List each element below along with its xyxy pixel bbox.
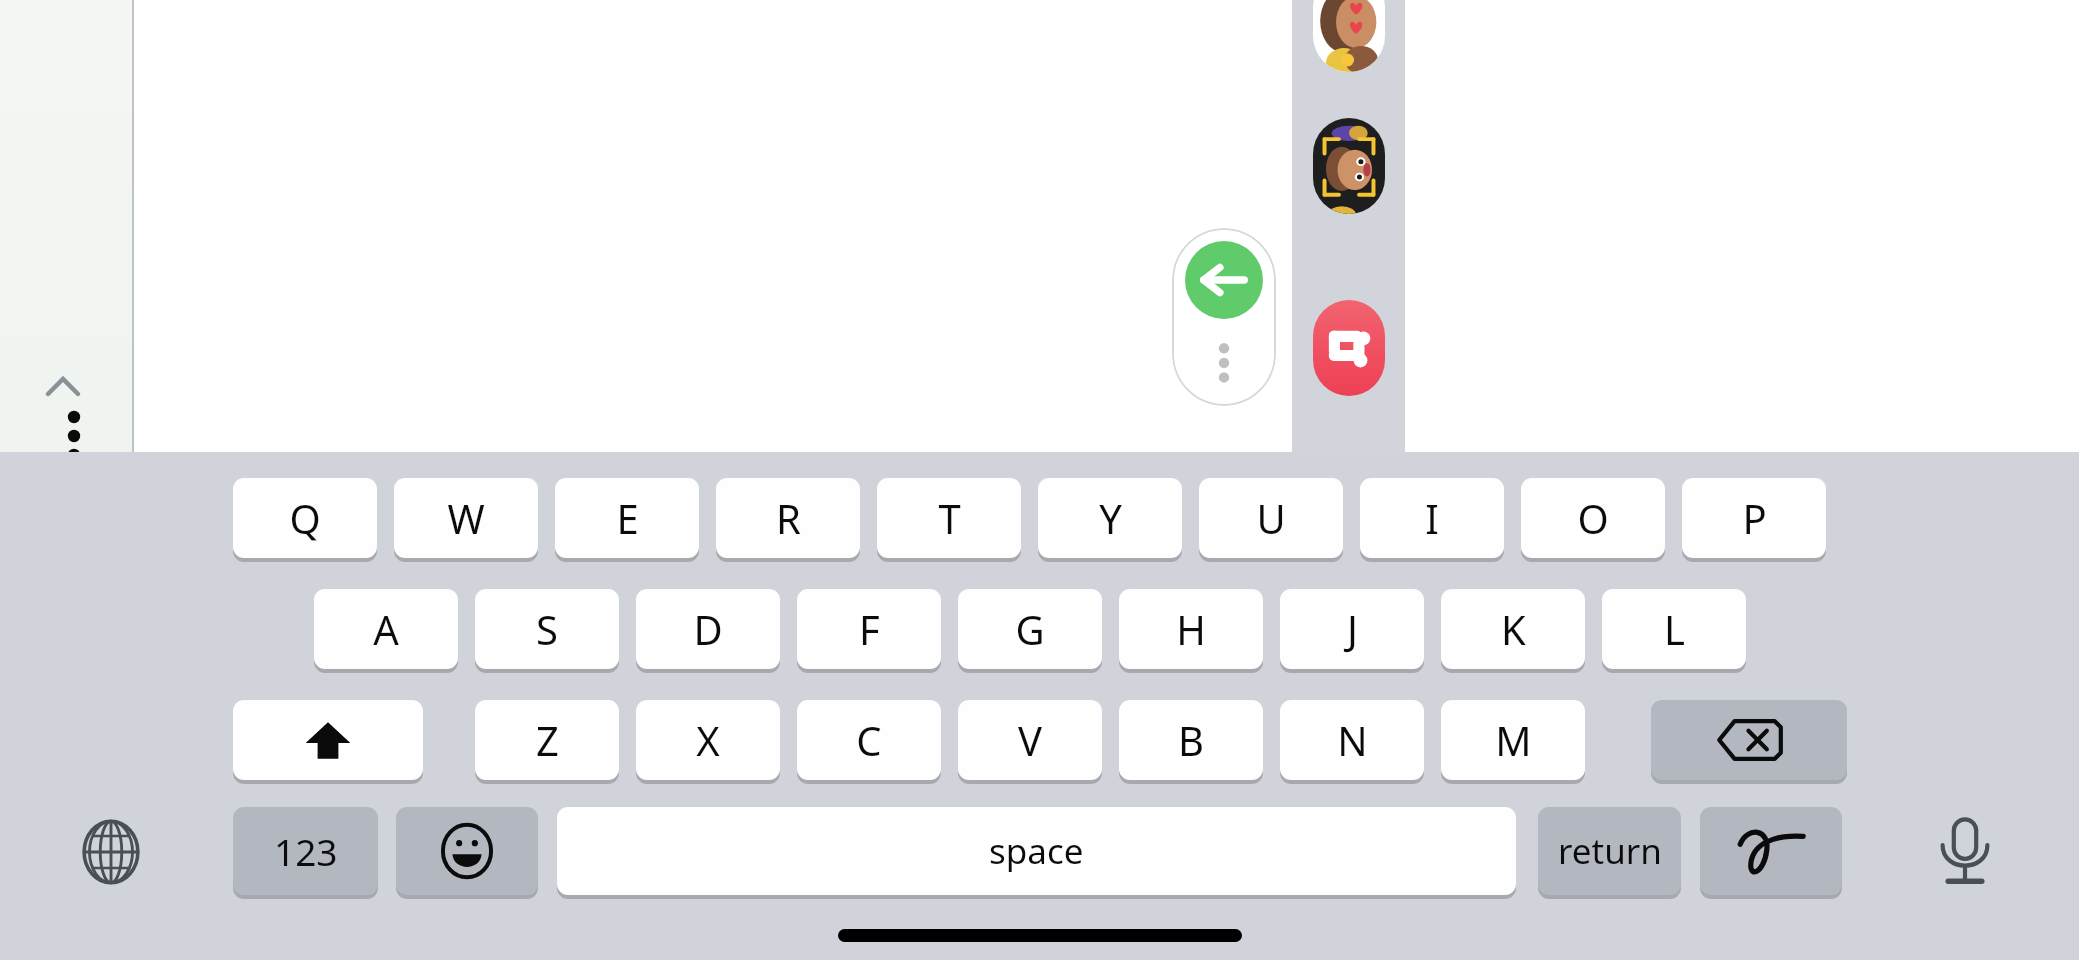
staticText: M [1495, 713, 1532, 767]
button[interactable]: space [557, 807, 1516, 895]
button[interactable]: Backspace [1651, 700, 1847, 780]
button[interactable]: Dictate [1918, 807, 2012, 897]
button[interactable]: S [475, 589, 619, 669]
button[interactable]: N [1280, 700, 1424, 780]
staticText: I [1425, 491, 1439, 545]
button[interactable]: Q [233, 478, 377, 558]
button[interactable]: App shortcut [1313, 300, 1385, 396]
button[interactable]: Handwriting [1700, 807, 1842, 895]
staticText: V [1018, 713, 1042, 767]
staticText: R [776, 491, 801, 545]
button[interactable]: R [716, 478, 860, 558]
button[interactable]: E [555, 478, 699, 558]
staticText: Z [536, 713, 559, 767]
staticText: Q [289, 491, 321, 545]
staticText: return [1558, 827, 1662, 875]
button[interactable]: J [1280, 589, 1424, 669]
staticText: C [856, 713, 882, 767]
button[interactable]: X [636, 700, 780, 780]
staticText: 123 [274, 826, 338, 876]
staticText: S [536, 602, 558, 656]
button[interactable]: Back [1185, 241, 1263, 319]
button[interactable]: Switch keyboard [64, 807, 158, 897]
staticText: W [447, 491, 485, 545]
staticText: E [616, 491, 639, 545]
button[interactable]: H [1119, 589, 1263, 669]
button[interactable]: F [797, 589, 941, 669]
button[interactable]: A [314, 589, 458, 669]
staticText: B [1178, 713, 1204, 767]
staticText: K [1501, 602, 1526, 656]
button[interactable]: U [1199, 478, 1343, 558]
button[interactable]: More options [1204, 336, 1244, 392]
staticText: Y [1099, 491, 1122, 545]
button[interactable]: L [1602, 589, 1746, 669]
staticText: F [859, 602, 880, 656]
staticText: space [989, 827, 1084, 875]
button[interactable]: Shift [233, 700, 423, 780]
button[interactable]: P [1682, 478, 1826, 558]
button[interactable]: O [1521, 478, 1665, 558]
button[interactable]: G [958, 589, 1102, 669]
staticText: H [1176, 602, 1206, 656]
staticText: A [373, 602, 399, 656]
staticText: G [1015, 602, 1045, 656]
button[interactable]: T [877, 478, 1021, 558]
button[interactable]: Memoji with frame [1313, 118, 1385, 214]
staticText: T [938, 491, 961, 545]
button[interactable]: Z [475, 700, 619, 780]
button[interactable]: V [958, 700, 1102, 780]
button[interactable]: Memoji sticker [1313, 0, 1385, 72]
button[interactable]: C [797, 700, 941, 780]
staticText: P [1742, 491, 1767, 545]
button[interactable]: W [394, 478, 538, 558]
staticText: O [1577, 491, 1609, 545]
button[interactable]: Emoji [396, 807, 538, 895]
staticText: U [1256, 491, 1286, 545]
button[interactable]: Expand panel [40, 370, 86, 452]
button[interactable]: M [1441, 700, 1585, 780]
staticText: N [1337, 713, 1368, 767]
button[interactable]: I [1360, 478, 1504, 558]
button[interactable]: 123 [233, 807, 378, 895]
staticText: X [696, 713, 720, 767]
staticText: L [1664, 602, 1685, 656]
staticText: D [693, 602, 723, 656]
button[interactable]: K [1441, 589, 1585, 669]
button[interactable]: B [1119, 700, 1263, 780]
staticText: J [1347, 602, 1358, 656]
button[interactable]: return [1538, 807, 1681, 895]
button[interactable]: Y [1038, 478, 1182, 558]
button[interactable]: D [636, 589, 780, 669]
